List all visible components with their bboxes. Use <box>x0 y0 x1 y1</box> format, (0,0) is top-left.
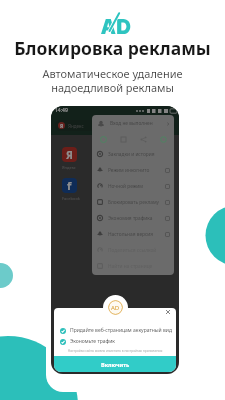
staticText: Закладки и история <box>108 151 155 158</box>
staticText: Экономия трафика <box>108 215 153 222</box>
button[interactable]: Настольная версия <box>97 226 170 242</box>
button[interactable]: Режим инкогнито <box>97 162 170 178</box>
button[interactable]: action3 <box>159 135 167 143</box>
button[interactable]: Я <box>62 147 77 162</box>
button[interactable]: Close <box>163 307 172 316</box>
staticText: Блокировать рекламу <box>108 199 160 206</box>
staticText: Facebook <box>62 196 80 201</box>
button[interactable]: Блокировать рекламу <box>97 194 170 210</box>
button[interactable]: action1 <box>119 135 127 143</box>
staticText: 14:49 <box>55 107 68 114</box>
staticText: Настольная версия <box>108 231 154 238</box>
staticText: Яндекс <box>68 123 84 129</box>
staticText: Ночной режим <box>108 183 143 190</box>
staticText: AD <box>111 304 120 312</box>
staticText: f <box>67 178 72 193</box>
staticText: Экономьте трафик <box>70 338 115 345</box>
button[interactable]: Я <box>55 120 175 131</box>
button[interactable]: Ночной режим <box>97 178 170 194</box>
button[interactable]: f <box>62 178 77 193</box>
button[interactable]: action0 <box>99 135 107 143</box>
button[interactable]: Вход не выполнен <box>97 115 170 132</box>
staticText: Вход не выполнен <box>110 120 153 127</box>
staticText: Яндекс <box>62 165 76 170</box>
staticText: Режим инкогнито <box>108 167 150 174</box>
button[interactable]: Включить <box>54 356 176 372</box>
staticText: Настройки сайта можно изменить в настрой… <box>54 349 176 353</box>
staticText: Блокировка рекламы <box>14 36 211 60</box>
staticText: Придайте веб-страницам аккуратный вид <box>70 327 172 334</box>
staticText: Автоматическое удаление надоедливой рекл… <box>42 66 183 95</box>
staticText: Включить <box>101 361 130 368</box>
button[interactable]: Закладки и история <box>97 146 170 162</box>
button[interactable]: action2 <box>139 135 147 143</box>
staticText: Я <box>60 123 64 129</box>
button[interactable]: Экономия трафика <box>97 210 170 226</box>
staticText: Я <box>66 148 73 162</box>
